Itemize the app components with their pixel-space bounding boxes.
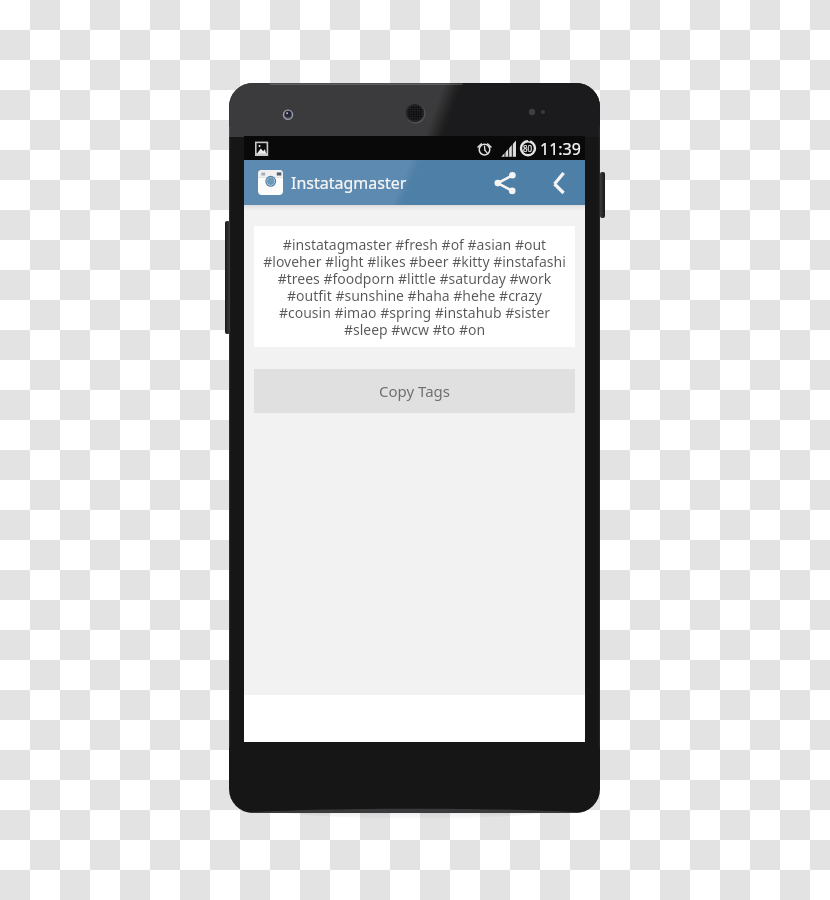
- staticText: 80: [523, 143, 533, 154]
- button[interactable]: Back: [536, 160, 581, 205]
- staticText: Instatagmaster: [291, 172, 407, 194]
- staticText: Copy Tags: [379, 381, 450, 401]
- staticText: 11:39: [540, 138, 581, 160]
- button[interactable]: Share: [482, 160, 528, 205]
- staticText: #instatagmaster #fresh #of #asian #out #…: [254, 235, 575, 339]
- button[interactable]: Copy Tags: [254, 369, 575, 413]
